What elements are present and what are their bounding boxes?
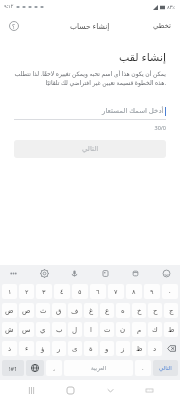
button[interactable]: Settings [37, 266, 52, 281]
button[interactable]: التالي [14, 140, 166, 158]
staticText: ع [105, 307, 110, 315]
button[interactable]: ن [116, 322, 130, 337]
button[interactable]: ط [164, 322, 178, 337]
staticText: و [105, 345, 109, 353]
button[interactable]: ل [68, 322, 82, 337]
staticText: ه [121, 307, 125, 315]
staticText: ٩ [150, 288, 154, 296]
button[interactable]: Change language [26, 360, 44, 376]
staticText: غ [89, 307, 94, 315]
button[interactable]: ٧ [108, 284, 124, 299]
staticText: ص [22, 307, 31, 315]
staticText: ا [90, 326, 92, 334]
staticText: ة [89, 345, 93, 353]
button[interactable]: ز [116, 341, 130, 356]
staticText: ٥ [78, 288, 82, 296]
button[interactable]: ع [100, 303, 114, 318]
button[interactable]: ث [36, 303, 50, 318]
button[interactable]: تخطي [145, 18, 180, 34]
button[interactable]: Help [6, 18, 22, 34]
button[interactable]: ج [164, 303, 178, 318]
staticText: ٣ [42, 288, 46, 296]
button[interactable]: م [132, 322, 146, 337]
button[interactable]: ى [68, 341, 82, 356]
button[interactable]: ١ [2, 284, 17, 299]
button[interactable]: ٣ [36, 284, 52, 299]
staticText: ٨٣٪ [167, 4, 176, 10]
button[interactable]: ٥ [72, 284, 88, 299]
staticText: . [142, 364, 144, 372]
staticText: ض [5, 307, 14, 315]
button[interactable]: !#1 [2, 360, 24, 376]
staticText: ذ [8, 345, 12, 353]
button[interactable]: ، [46, 360, 62, 376]
button[interactable]: Recent apps [22, 381, 40, 399]
staticText: إنشاء حساب [70, 21, 110, 31]
button[interactable]: Keyboard [140, 381, 158, 399]
button[interactable]: ه [116, 303, 130, 318]
staticText: تخطي [153, 22, 172, 30]
button[interactable]: التالي [153, 360, 178, 376]
button[interactable]: ح [148, 303, 162, 318]
button[interactable]: س [19, 322, 34, 337]
staticText: ث [40, 307, 47, 315]
button[interactable]: ق [52, 303, 66, 318]
staticText: ج [169, 307, 174, 315]
staticText: خ [137, 307, 142, 315]
button[interactable]: ٤ [54, 284, 70, 299]
staticText: د [153, 345, 157, 353]
button[interactable]: د [148, 341, 162, 356]
staticText: ٤ [60, 288, 64, 296]
button[interactable]: ظ [132, 341, 146, 356]
staticText: ، [53, 365, 55, 372]
staticText: ز [121, 345, 125, 353]
button[interactable]: Home [61, 381, 79, 399]
button[interactable]: ا [84, 322, 98, 337]
staticText: س [22, 326, 31, 334]
button[interactable]: ؤ [36, 341, 50, 356]
button[interactable]: ض [2, 303, 17, 318]
button[interactable]: خ [132, 303, 146, 318]
button[interactable]: Voice input [67, 266, 82, 281]
button[interactable]: ص [19, 303, 34, 318]
button[interactable]: غ [84, 303, 98, 318]
button[interactable]: ذ [2, 341, 17, 356]
button[interactable]: أدخل اسمك المستعار [14, 103, 166, 119]
button[interactable]: ٩ [144, 284, 160, 299]
staticText: ٩:١٢ [4, 3, 14, 10]
button[interactable]: ت [100, 322, 114, 337]
staticText: إنشاء لقب [14, 49, 166, 64]
button[interactable]: ب [52, 322, 66, 337]
staticText: ؤ [41, 345, 45, 353]
button[interactable]: Emoji [159, 266, 174, 281]
button[interactable]: ي [36, 322, 50, 337]
button[interactable]: ٨ [126, 284, 142, 299]
staticText: ٧ [114, 288, 118, 296]
staticText: م [137, 326, 142, 334]
button[interactable]: و [100, 341, 114, 356]
staticText: ى [72, 345, 78, 353]
button[interactable]: العربية [64, 360, 133, 376]
button[interactable]: ر [52, 341, 66, 356]
button[interactable]: ٢ [19, 284, 34, 299]
button[interactable]: Back [101, 381, 119, 399]
staticText: ن [120, 326, 126, 334]
staticText: ح [153, 307, 158, 315]
button[interactable]: ك [148, 322, 162, 337]
button[interactable]: ء [19, 341, 34, 356]
button[interactable]: ف [68, 303, 82, 318]
button[interactable]: Sticker [98, 266, 113, 281]
staticText: ر [57, 345, 61, 353]
button[interactable]: ة [84, 341, 98, 356]
staticText: ٨ [132, 288, 136, 296]
staticText: ء [25, 345, 29, 353]
button[interactable]: More options [6, 266, 21, 281]
button[interactable]: ٠ [162, 284, 178, 299]
button[interactable]: . [135, 360, 151, 376]
staticText: !#1 [9, 365, 18, 372]
button[interactable]: ٦ [90, 284, 106, 299]
button[interactable]: Clipboard [128, 266, 143, 281]
staticText: ل [72, 326, 78, 334]
button[interactable]: ش [2, 322, 17, 337]
button[interactable]: Backspace [164, 340, 178, 357]
